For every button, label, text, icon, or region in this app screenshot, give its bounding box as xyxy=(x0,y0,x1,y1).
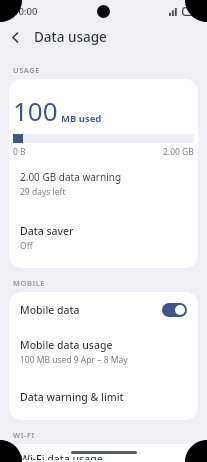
staticText: Data saver xyxy=(20,224,74,238)
staticText: Mobile data xyxy=(20,303,80,317)
staticText: Mobile data usage xyxy=(20,338,113,352)
staticText: 10:00 xyxy=(13,5,38,18)
staticText: 0 B xyxy=(13,146,26,158)
button[interactable]: Data warning & limit xyxy=(9,388,198,406)
staticText: WI-FI xyxy=(13,430,35,440)
staticText: USAGE xyxy=(13,65,41,75)
button[interactable]: Data saver xyxy=(9,222,198,254)
button[interactable]: Back xyxy=(0,22,30,52)
staticText: MOBILE xyxy=(13,278,46,288)
staticText: 29 days left xyxy=(20,186,66,198)
staticText: 2.00 GB data warning xyxy=(20,170,122,184)
staticText: Off xyxy=(20,240,33,252)
staticText: 100 MB used 9 Apr – 8 May xyxy=(20,354,128,366)
button[interactable]: Mobile data usage xyxy=(9,336,198,368)
staticText: MB used xyxy=(61,112,102,125)
button[interactable]: Wi-Fi data usage xyxy=(9,450,198,462)
staticText: Data warning & limit xyxy=(20,390,124,404)
staticText: 100 xyxy=(13,93,58,128)
staticText: Wi-Fi data usage xyxy=(20,452,103,460)
button[interactable]: Mobile data xyxy=(9,292,198,328)
staticText: 2.00 GB xyxy=(163,146,194,158)
staticText: Data usage xyxy=(34,28,107,46)
button[interactable]: 2.00 GB data warning xyxy=(9,168,198,200)
